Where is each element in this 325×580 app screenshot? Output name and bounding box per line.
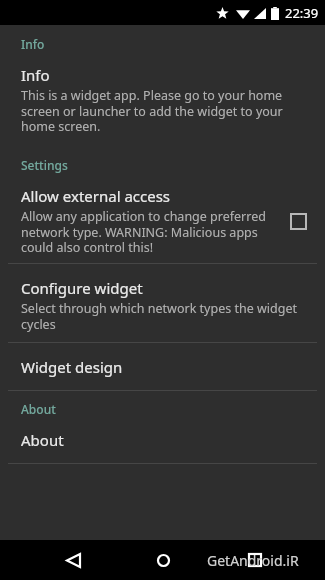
staticText: Select through which network types the w… xyxy=(21,300,305,332)
button[interactable]: Allow external access xyxy=(0,184,325,257)
button[interactable]: About xyxy=(0,428,325,452)
button[interactable]: Configure widget xyxy=(0,276,325,334)
staticText: Widget design xyxy=(21,357,123,377)
button[interactable]: Info xyxy=(0,63,325,136)
button[interactable]: Widget design xyxy=(0,355,325,379)
staticText: Settings xyxy=(21,157,68,173)
staticText: About xyxy=(21,401,56,417)
staticText: 22:39 xyxy=(285,4,319,22)
staticText: About xyxy=(21,430,64,450)
button[interactable]: Back xyxy=(56,543,90,577)
button[interactable]: Recent apps xyxy=(238,543,272,577)
staticText: Allow any application to change preferre… xyxy=(21,208,275,255)
button[interactable]: Home xyxy=(146,543,180,577)
staticText: Info xyxy=(21,36,45,52)
staticText: This is a widget app. Please go to your … xyxy=(21,87,305,134)
staticText: Info xyxy=(21,65,50,85)
other: Allow external access checkbox xyxy=(283,206,313,236)
staticText: Allow external access xyxy=(21,186,171,206)
staticText: Configure widget xyxy=(21,278,143,298)
staticText: GetAndroid.iR xyxy=(207,551,317,570)
